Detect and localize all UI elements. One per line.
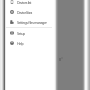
button[interactable]: Setup: [5, 28, 52, 38]
button[interactable]: Help: [5, 38, 52, 48]
staticText: Device libra: [17, 10, 32, 15]
button[interactable]: Devices list: [5, 0, 52, 7]
staticText: Help: [17, 41, 24, 46]
staticText: Settings files manager: [17, 20, 47, 25]
button[interactable]: Device libra: [5, 7, 52, 17]
staticText: Devices list: [17, 0, 32, 5]
staticText: Setup: [17, 31, 25, 36]
button[interactable]: Settings files manager: [5, 17, 52, 27]
